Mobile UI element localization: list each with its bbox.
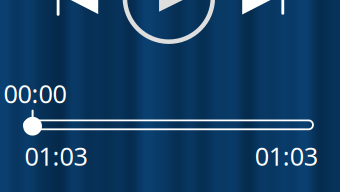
staticText: 01:03 [255, 139, 318, 173]
staticText: 01:03 [24, 139, 87, 173]
button[interactable]: Previous track [57, 0, 98, 16]
staticText: 00:00 [3, 76, 66, 110]
button[interactable]: Next track [242, 0, 284, 15]
button[interactable]: Play [123, 0, 215, 44]
